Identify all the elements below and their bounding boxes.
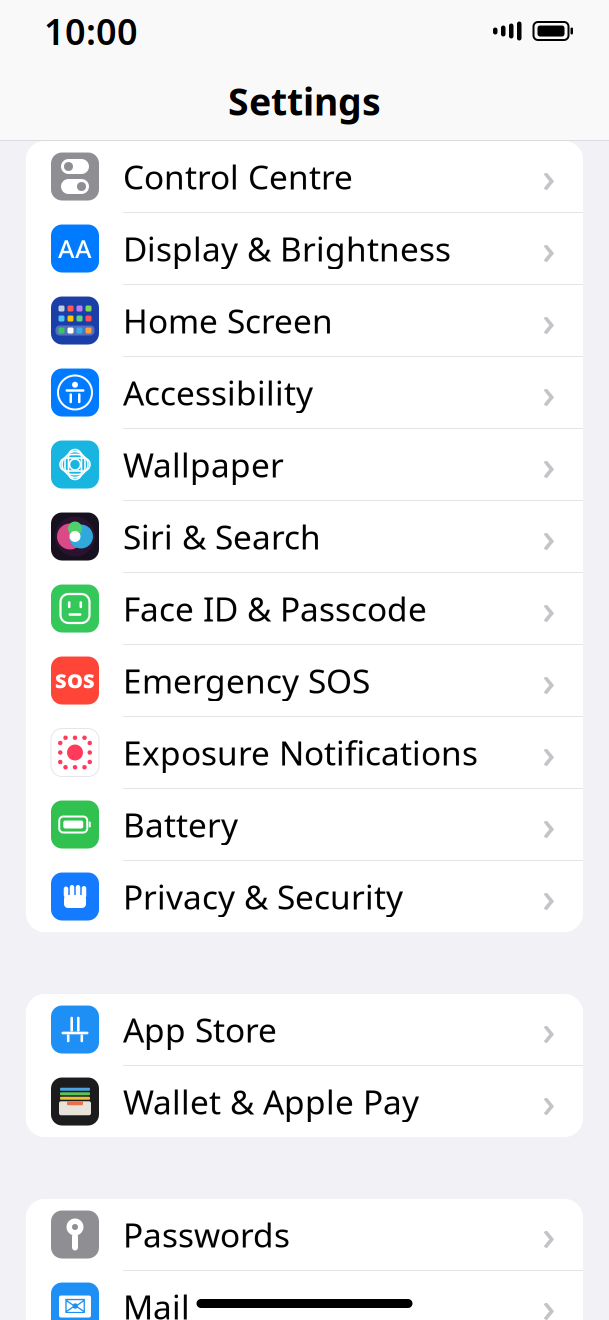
staticText: Mail [123,1284,190,1320]
staticText: Home Screen [123,298,333,343]
staticText: Display & Brightness [123,226,451,271]
staticText: 10:00 [44,7,138,55]
staticText: › [542,1279,555,1320]
staticText: › [542,653,555,708]
button[interactable]: Battery [26,789,583,861]
staticText: › [542,581,555,636]
staticText: Emergency SOS [123,658,370,703]
button[interactable]: Wallet & Apple Pay [26,1066,583,1137]
button[interactable]: Exposure Notifications [26,717,583,789]
staticText: › [542,1002,555,1057]
staticText: › [542,797,555,852]
staticText: App Store [123,1007,277,1052]
staticText: Wallet & Apple Pay [123,1079,419,1124]
staticText: › [542,437,555,492]
staticText: › [542,1074,555,1129]
staticText: Settings [228,76,381,126]
staticText: SOS [55,667,95,694]
staticText: › [542,725,555,780]
button[interactable]: ✉ [26,1271,583,1320]
staticText: AA [58,232,92,265]
button[interactable]: Siri & Search [26,501,583,573]
button[interactable]: App Store [26,994,583,1066]
staticText: › [542,869,555,924]
button[interactable]: Control Centre [26,141,583,213]
button[interactable]: Privacy & Security [26,861,583,932]
staticText: Siri & Search [123,514,321,559]
staticText: Battery [123,802,238,847]
staticText: Accessibility [123,370,313,415]
staticText: Exposure Notifications [123,730,478,775]
button[interactable]: Accessibility [26,357,583,429]
staticText: › [542,365,555,420]
staticText: ✉ [63,1291,86,1320]
staticText: › [542,149,555,204]
staticText: Passwords [123,1212,290,1257]
staticText: Privacy & Security [123,874,403,919]
staticText: Control Centre [123,154,353,199]
staticText: › [542,221,555,276]
button[interactable]: Face ID & Passcode [26,573,583,645]
button[interactable]: Passwords [26,1199,583,1271]
button[interactable]: Home Screen [26,285,583,357]
staticText: Face ID & Passcode [123,586,427,631]
button[interactable]: SOS [26,645,583,717]
staticText: › [542,293,555,348]
button[interactable]: Wallpaper [26,429,583,501]
staticText: › [542,509,555,564]
staticText: › [542,1207,555,1262]
staticText: Wallpaper [123,442,284,487]
button[interactable]: AA [26,213,583,285]
